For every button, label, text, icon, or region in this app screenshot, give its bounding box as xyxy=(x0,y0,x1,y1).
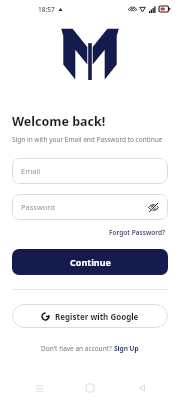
button[interactable]: Email xyxy=(12,158,168,184)
button[interactable]: Forgot Password? xyxy=(107,226,168,239)
staticText: Forgot Password? xyxy=(109,228,166,237)
staticText: Register with Google xyxy=(55,311,139,322)
staticText: Sign in with your Email and Password to … xyxy=(12,135,163,144)
staticText: Sign Up xyxy=(114,344,139,353)
button[interactable]: Recent apps xyxy=(26,376,52,400)
button[interactable]: Back xyxy=(129,376,155,400)
staticText: Welcome back! xyxy=(12,113,106,130)
button[interactable]: Register with Google xyxy=(12,304,168,328)
staticText: Password xyxy=(21,202,55,212)
button[interactable]: Show password xyxy=(147,201,159,213)
staticText: Continue xyxy=(70,256,111,268)
staticText: 18:57 xyxy=(38,5,55,14)
button[interactable]: Continue xyxy=(12,249,168,275)
button[interactable]: Home xyxy=(77,376,103,400)
staticText: Don't have an account? xyxy=(41,344,114,353)
button[interactable]: Password xyxy=(12,194,168,220)
staticText: Email xyxy=(21,166,41,176)
button[interactable]: Sign Up xyxy=(114,344,139,353)
